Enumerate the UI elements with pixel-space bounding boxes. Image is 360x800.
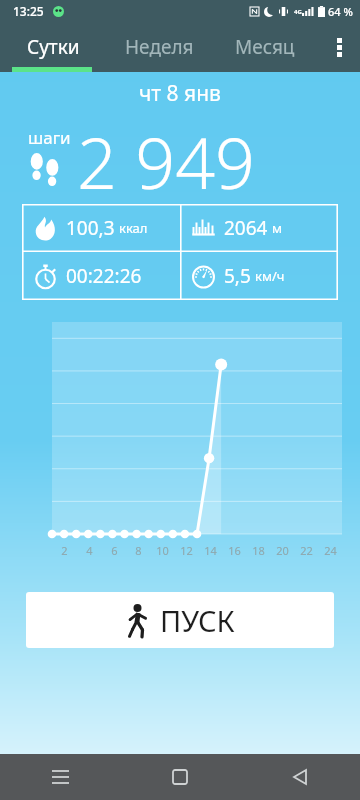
button[interactable]: 00:22:26 [22, 252, 180, 300]
staticText: 16 [228, 543, 241, 558]
staticText: м [272, 219, 282, 237]
staticText: 5,5 [224, 263, 251, 289]
button[interactable]: ПУСК [26, 592, 334, 648]
button[interactable]: Back [240, 754, 360, 800]
staticText: 24 [324, 543, 337, 558]
button[interactable]: More options [318, 22, 360, 72]
staticText: 6 [111, 543, 118, 558]
button[interactable]: 100,3 [22, 204, 180, 252]
staticText: 8 [135, 543, 142, 558]
staticText: 2 [61, 543, 68, 558]
staticText: 2064 [224, 215, 268, 241]
staticText: 14 [204, 543, 217, 558]
button[interactable]: 2064 [180, 204, 338, 252]
staticText: 00:22:26 [66, 263, 142, 289]
staticText: чт 8 янв [139, 79, 221, 108]
staticText: км/ч [255, 267, 285, 285]
staticText: 64 % [328, 4, 353, 19]
button[interactable]: Сутки [0, 22, 106, 72]
staticText: ПУСК [160, 601, 235, 640]
staticText: Сутки [27, 34, 80, 60]
staticText: ккал [119, 219, 148, 237]
staticText: 20 [276, 543, 289, 558]
staticText: 22 [300, 543, 313, 558]
staticText: 100,3 [66, 215, 115, 241]
button[interactable]: Месяц [212, 22, 318, 72]
button[interactable]: Неделя [106, 22, 212, 72]
staticText: Месяц [235, 34, 295, 60]
staticText: 18 [252, 543, 265, 558]
staticText: Неделя [125, 34, 194, 60]
staticText: 4 [86, 543, 93, 558]
button[interactable]: Recent apps [0, 754, 120, 800]
staticText: 4G [294, 8, 302, 16]
staticText: 10 [156, 543, 169, 558]
button[interactable]: Home [120, 754, 240, 800]
button[interactable]: 5,5 [180, 252, 338, 300]
staticText: 13:25 [13, 3, 44, 19]
staticText: 2 949 [77, 114, 256, 200]
staticText: 12 [180, 543, 193, 558]
staticText: шаги [28, 126, 71, 149]
